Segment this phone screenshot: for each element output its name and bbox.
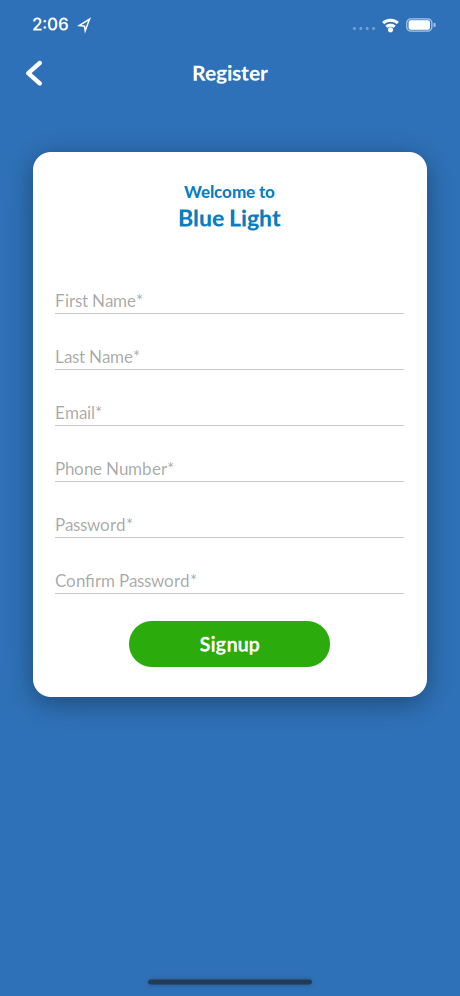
staticText: Email* [55,402,102,423]
staticText: Phone Number* [55,458,174,479]
button[interactable]: Confirm Password* [55,560,404,594]
button[interactable]: Password* [55,504,404,538]
button[interactable]: Last Name* [55,336,404,370]
button[interactable]: Phone Number* [55,448,404,482]
staticText: 2:06 [32,14,69,35]
button[interactable]: First Name* [55,280,404,314]
staticText: Confirm Password* [55,570,197,591]
button[interactable]: Email* [55,392,404,426]
staticText: First Name* [55,290,143,311]
staticText: Password* [55,514,133,535]
staticText: Signup [199,632,259,656]
staticText: Welcome to [184,181,275,202]
button[interactable]: Back [18,53,50,93]
staticText: Blue Light [178,204,281,231]
staticText: Last Name* [55,346,140,367]
staticText: Register [192,60,268,85]
button[interactable]: Signup [129,621,330,667]
